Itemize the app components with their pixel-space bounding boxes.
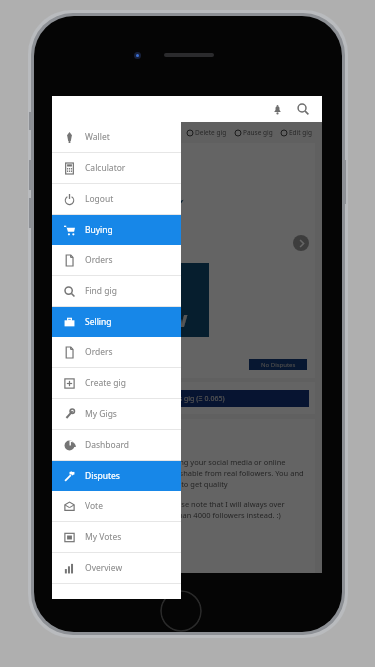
staticText: Vote [85,500,103,512]
button[interactable]: Vote [52,491,181,521]
staticText: Delete gig [195,128,227,137]
button[interactable]: Logout [52,184,181,214]
staticText: Create gig [85,377,126,389]
button[interactable]: Find gig [52,276,181,306]
button[interactable]: Disputes [52,461,181,491]
staticText: Edit gig [289,128,312,137]
button[interactable]: No Disputes [249,359,307,370]
button[interactable]: My Gigs [52,399,181,429]
staticText: Pause gig [243,128,273,137]
button[interactable]: Buying [52,215,181,245]
button[interactable]: Wallet [52,122,181,152]
staticText: Selling [85,316,112,328]
staticText: Disputes [85,470,120,482]
button[interactable]: Orders [52,337,181,367]
button[interactable]: Selling [52,307,181,337]
staticText: Orders [85,254,113,266]
staticText: My Votes [85,531,122,543]
staticText: No Disputes [261,361,296,369]
button[interactable]: Edit gig [281,128,312,137]
staticText: Are you thinking about upgrading your so… [69,457,305,489]
staticText: follow [120,303,188,333]
staticText: You will get 3000 followers. Please note… [69,499,305,520]
button[interactable]: Calculator [52,153,181,183]
button[interactable]: Dashboard [52,430,181,460]
button[interactable]: Search [292,98,314,120]
staticText: Find gig [85,285,117,297]
button[interactable]: My Votes [52,522,181,552]
button[interactable]: Overview [52,553,181,583]
staticText: Overview [85,562,123,574]
staticText: 3K [138,268,171,303]
button[interactable]: Next [293,235,309,251]
staticText: Buying [85,224,113,236]
staticText: Dashboard [85,439,130,451]
staticText: Calculator [85,162,126,174]
button[interactable]: Notifications [266,98,288,120]
staticText: Order this gig (Ξ 0.065) [149,394,225,404]
button[interactable]: Pause gig [235,128,273,137]
button[interactable]: Orders [52,245,181,275]
button[interactable]: Delete gig [187,128,227,137]
staticText: Logout [85,193,114,205]
button[interactable]: Create gig [52,368,181,398]
button[interactable]: Order this gig (Ξ 0.065) [65,390,309,407]
staticText: Wallet [85,131,110,143]
staticText: Twitter followers [67,149,130,160]
staticText: My Gigs [85,408,117,420]
staticText: Orders [85,346,113,358]
